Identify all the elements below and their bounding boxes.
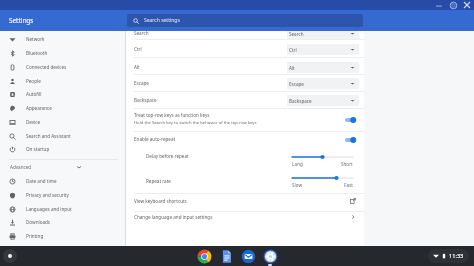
staticText: Change language and input settings — [134, 214, 213, 220]
button[interactable]: Repeat rate — [292, 175, 353, 181]
button[interactable]: Bluetooth — [0, 46, 126, 60]
button[interactable]: Repeat rate — [126, 173, 364, 189]
button[interactable]: Backspace — [126, 92, 364, 108]
staticText: Long — [292, 161, 303, 167]
staticText: Advanced — [10, 164, 32, 170]
staticText: Short — [341, 161, 353, 167]
button[interactable]: People — [0, 74, 126, 88]
button[interactable]: Enable auto-repeat — [340, 135, 361, 145]
button[interactable]: Network — [0, 32, 126, 46]
button[interactable]: Docs — [218, 248, 234, 264]
staticText: Languages and input — [26, 206, 72, 212]
staticText: Network — [26, 36, 45, 42]
staticText: Printing — [26, 233, 44, 239]
staticText: Bluetooth — [26, 50, 48, 56]
button[interactable]: View keyboard shortcuts — [126, 193, 364, 209]
staticText: Fast — [344, 182, 353, 188]
button[interactable]: Privacy and security — [0, 188, 126, 202]
button[interactable]: Date and time — [0, 174, 126, 188]
button[interactable]: Device — [0, 115, 126, 129]
staticText: Search settings — [144, 17, 180, 24]
staticText: Escape — [134, 80, 149, 86]
staticText: Hold the Search key to switch the behavi… — [134, 120, 257, 126]
staticText: Date and time — [26, 178, 57, 184]
button[interactable]: Printing — [0, 229, 126, 243]
staticText: Backspace — [289, 98, 312, 104]
button[interactable]: Chrome — [196, 248, 212, 264]
button[interactable]: Advanced — [0, 160, 126, 174]
staticText: Appearance — [26, 105, 52, 111]
button[interactable]: Languages and input — [0, 202, 126, 216]
button[interactable]: Alt — [126, 59, 364, 75]
staticText: Ctrl — [289, 47, 297, 53]
staticText: Backspace — [134, 97, 157, 103]
button[interactable]: Minimize — [432, 0, 446, 10]
staticText: Search and Assistant — [26, 133, 71, 139]
button[interactable]: Change language and input settings — [126, 209, 364, 225]
staticText: Device — [26, 119, 41, 125]
button[interactable]: Search and Assistant — [0, 129, 126, 143]
staticText: Downloads — [26, 219, 51, 225]
staticText: Connected devices — [26, 64, 67, 70]
staticText: Alt — [289, 65, 295, 71]
staticText: Enable auto-repeat — [134, 136, 176, 142]
button[interactable]: Delay before repeat — [292, 154, 353, 160]
staticText: Delay before repeat — [146, 153, 189, 159]
button[interactable]: Escape — [126, 75, 364, 91]
staticText: Treat top-row keys as function keys — [134, 112, 210, 118]
staticText: Settings — [9, 16, 34, 25]
staticText: Escape — [289, 81, 304, 87]
button[interactable]: Treat top-row keys as function keys — [340, 115, 361, 125]
staticText: Autofill — [26, 91, 42, 97]
button[interactable]: Maximize — [446, 0, 460, 10]
button[interactable]: Search — [126, 31, 364, 41]
staticText: Alt — [134, 64, 140, 70]
button[interactable]: Status tray — [428, 249, 469, 263]
button[interactable]: Appearance — [0, 101, 126, 115]
staticText: Privacy and security — [26, 192, 69, 198]
button[interactable]: Close — [460, 0, 474, 10]
staticText: On startup — [26, 146, 50, 152]
button[interactable]: Delay before repeat — [126, 148, 364, 164]
button[interactable]: Gmail — [240, 248, 256, 264]
staticText: Search — [289, 31, 304, 37]
button[interactable]: On startup — [0, 142, 126, 156]
staticText: Ctrl — [134, 46, 142, 52]
button[interactable]: Enable auto-repeat — [126, 132, 364, 150]
button[interactable]: Autofill — [0, 87, 126, 101]
staticText: Repeat rate — [146, 178, 171, 184]
staticText: View keyboard shortcuts — [134, 198, 187, 204]
button[interactable]: Ctrl — [126, 41, 364, 57]
button[interactable]: Downloads — [0, 215, 126, 229]
staticText: People — [26, 78, 41, 84]
button[interactable]: Treat top-row keys as function keys — [126, 108, 364, 128]
button[interactable]: Connected devices — [0, 60, 126, 74]
button[interactable]: Launcher — [3, 249, 17, 263]
staticText: Search — [134, 31, 149, 36]
staticText: 11:33 — [449, 252, 464, 260]
button[interactable]: Settings — [262, 248, 278, 264]
button[interactable]: Search settings — [127, 14, 363, 27]
staticText: Slow — [292, 182, 303, 188]
